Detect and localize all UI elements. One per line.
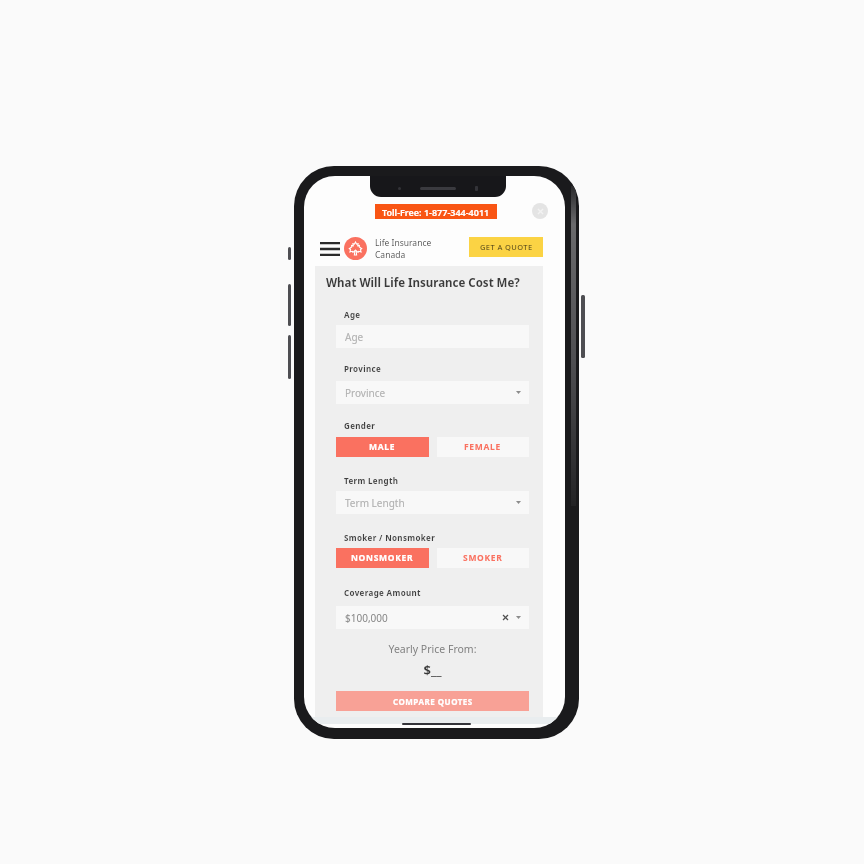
staticText: Life Insurance (375, 237, 432, 249)
button[interactable]: MALE (336, 437, 429, 457)
staticText: Term Length (344, 475, 399, 486)
staticText: What Will Life Insurance Cost Me? (326, 275, 520, 291)
button[interactable]: NONSMOKER (336, 548, 429, 568)
staticText: Smoker / Nonsmoker (344, 532, 436, 543)
staticText: SMOKER (463, 552, 503, 564)
staticText: Age (344, 309, 361, 320)
staticText: Coverage Amount (344, 587, 421, 598)
staticText: Age (345, 330, 364, 344)
button[interactable]: Close (532, 203, 548, 219)
staticText: MALE (369, 441, 396, 453)
staticText: NONSMOKER (351, 552, 414, 564)
button[interactable]: GET A QUOTE (469, 237, 543, 257)
staticText: COMPARE QUOTES (393, 696, 473, 707)
staticText: Toll-Free: 1-877-344-4011 (382, 206, 490, 218)
button[interactable]: COMPARE QUOTES (336, 691, 529, 711)
button[interactable]: $100,000 (336, 606, 529, 629)
staticText: $__ (336, 661, 529, 679)
button[interactable]: Open navigation menu (318, 239, 342, 258)
staticText: GET A QUOTE (480, 242, 533, 252)
staticText: Term Length (345, 496, 405, 510)
staticText: Province (344, 363, 382, 374)
staticText: Province (345, 386, 386, 400)
staticText: Canada (375, 249, 406, 261)
button[interactable]: SMOKER (437, 548, 529, 568)
staticText: Gender (344, 420, 376, 431)
button[interactable]: Province (336, 381, 529, 404)
staticText: FEMALE (464, 441, 502, 453)
button[interactable]: FEMALE (437, 437, 529, 457)
button[interactable]: Age (336, 325, 529, 348)
button[interactable]: Term Length (336, 491, 529, 514)
staticText: $100,000 (345, 611, 388, 625)
button[interactable]: Toll-Free: 1-877-344-4011 (375, 204, 497, 219)
staticText: Yearly Price From: (336, 642, 529, 656)
